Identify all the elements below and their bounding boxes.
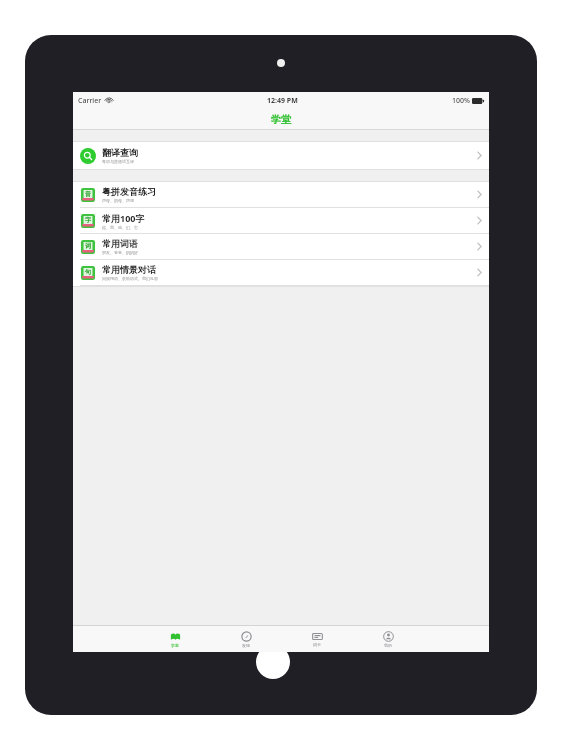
staticText: 词: [85, 242, 91, 250]
staticText: 我的: [384, 643, 392, 648]
staticText: 100%: [452, 96, 470, 106]
staticText: 问候用语、求助语式、我们见面: [102, 276, 158, 281]
button[interactable]: 字: [73, 208, 489, 233]
staticText: 常用100字: [102, 212, 145, 224]
button[interactable]: 句: [73, 260, 489, 285]
button[interactable]: 音: [73, 182, 489, 207]
staticText: 词卡: [313, 642, 321, 647]
button[interactable]: 翻译查询: [73, 142, 489, 169]
button[interactable]: 学堂: [158, 626, 192, 652]
staticText: 学堂: [271, 113, 291, 126]
staticText: 常用情景对话: [102, 264, 156, 275]
staticText: 声母、韵母、声调: [102, 198, 134, 203]
staticText: 粤语与普通话互译: [102, 159, 134, 164]
button[interactable]: 词: [73, 234, 489, 259]
staticText: 粤拼发音练习: [102, 186, 156, 197]
button[interactable]: 发现: [229, 626, 263, 652]
staticText: 朋友、爸爸、妈妈好: [102, 250, 138, 255]
staticText: 你、我、他、们、它: [102, 225, 138, 230]
staticText: 学堂: [171, 643, 179, 648]
staticText: 常用词语: [102, 238, 138, 249]
staticText: 翻译查询: [102, 147, 138, 158]
staticText: 字: [85, 216, 91, 224]
staticText: 12:49 PM: [267, 96, 298, 106]
staticText: 音: [85, 190, 91, 198]
staticText: 句: [85, 268, 91, 276]
staticText: 发现: [242, 643, 250, 648]
button[interactable]: 词卡: [300, 626, 334, 652]
staticText: Carrier: [78, 96, 102, 106]
button[interactable]: 我的: [371, 626, 405, 652]
